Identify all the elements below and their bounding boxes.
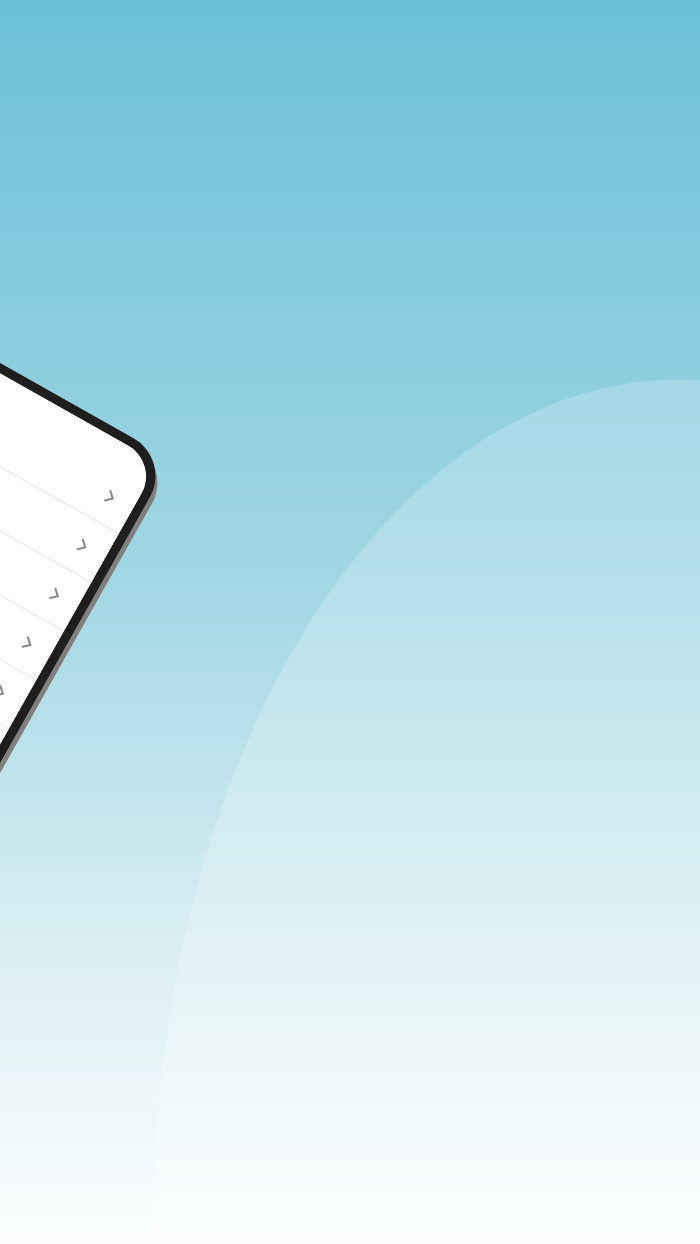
staticText: Ayşe Demir — [0, 391, 80, 551]
button[interactable]: Cem Öztürk — [0, 464, 64, 681]
staticText: Burak Kaya — [0, 440, 53, 599]
button[interactable]: Burak Kaya — [0, 415, 91, 632]
staticText: Ahmet Yılmaz — [0, 342, 108, 502]
staticText: Cem Öztürk — [0, 488, 25, 648]
button[interactable]: Ahmet Yılmaz — [0, 317, 146, 534]
button[interactable]: Deniz Arslan — [0, 513, 36, 729]
button[interactable]: Elif Şahin — [0, 561, 9, 778]
button[interactable]: Ayşe Demir — [0, 366, 119, 583]
